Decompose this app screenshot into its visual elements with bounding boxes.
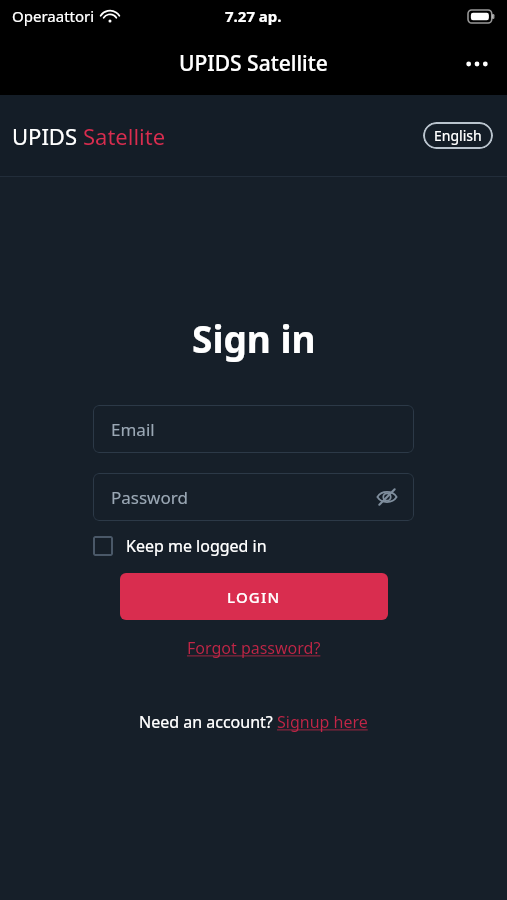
- button[interactable]: English: [423, 122, 493, 149]
- button[interactable]: UPIDS: [12, 121, 166, 151]
- staticText: LOGIN: [227, 587, 281, 607]
- button[interactable]: Show password: [370, 480, 404, 514]
- staticText: 7.27 ap.: [225, 6, 282, 26]
- button[interactable]: Keep me logged in: [93, 535, 414, 557]
- button[interactable]: Email: [93, 405, 414, 453]
- staticText: Keep me logged in: [126, 535, 267, 557]
- button[interactable]: LOGIN: [120, 573, 388, 620]
- button[interactable]: Signup here: [277, 711, 368, 733]
- staticText: Satellite: [83, 121, 166, 151]
- staticText: Signup here: [277, 711, 368, 733]
- staticText: Email: [111, 418, 155, 441]
- staticText: Password: [111, 486, 188, 509]
- staticText: Operaattori: [12, 6, 95, 26]
- staticText: English: [434, 126, 482, 145]
- staticText: Forgot password?: [187, 637, 321, 659]
- staticText: UPIDS Satellite: [179, 49, 328, 78]
- button[interactable]: Forgot password?: [183, 633, 325, 663]
- button[interactable]: More options: [455, 42, 499, 86]
- staticText: UPIDS: [12, 121, 83, 151]
- staticText: Sign in: [192, 313, 316, 363]
- staticText: Need an account?: [139, 711, 277, 733]
- button[interactable]: Password: [93, 473, 414, 521]
